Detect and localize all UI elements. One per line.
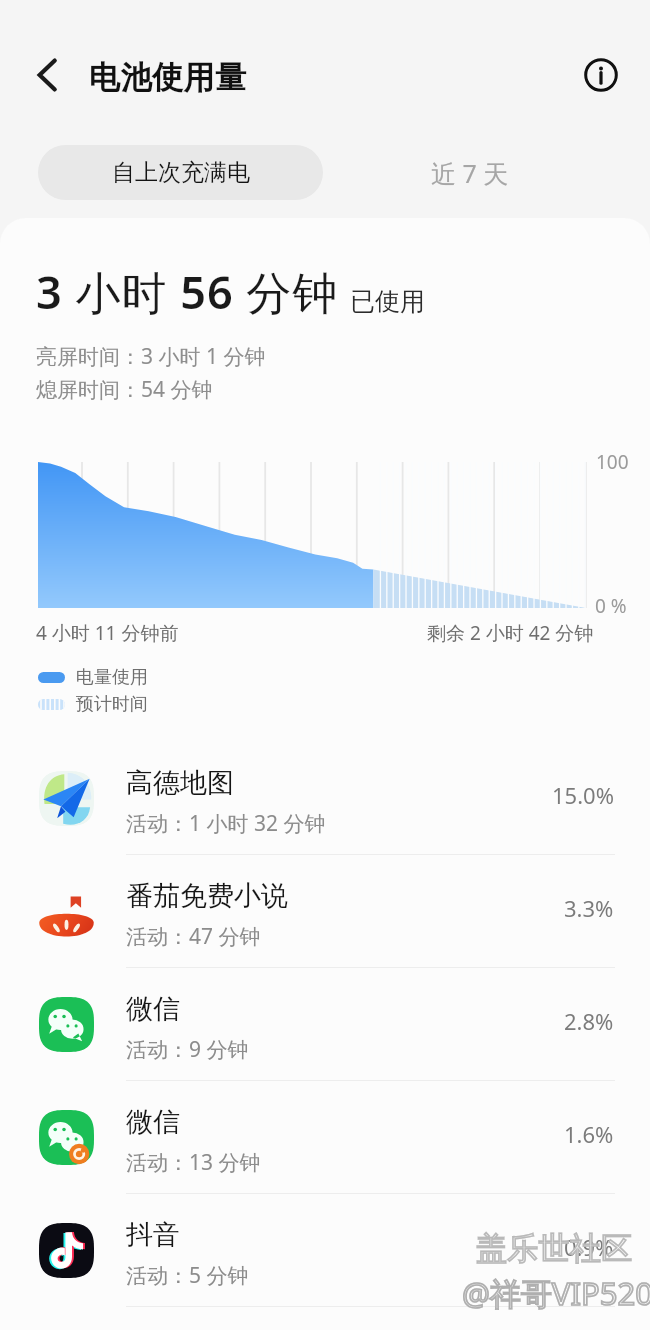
staticText: 3 小时 56 分钟 [36, 261, 339, 322]
staticText: 电量使用 [76, 666, 148, 689]
button[interactable]: 番茄免费小说 [0, 855, 650, 967]
button[interactable]: 抖音 [0, 1194, 650, 1306]
staticText: 活动：13 分钟 [126, 1148, 261, 1177]
staticText: 1.6% [564, 1119, 614, 1149]
staticText: 0 % [595, 593, 627, 619]
staticText: 预计时间 [76, 693, 148, 716]
staticText: 剩余 2 小时 42 分钟 [427, 620, 594, 646]
staticText: 4 小时 11 分钟前 [36, 620, 179, 646]
staticText: 近 7 天 [431, 156, 509, 190]
staticText: 0.9% [564, 1232, 614, 1262]
staticText: 15.0% [552, 780, 614, 810]
button[interactable]: 微信 [0, 1081, 650, 1193]
staticText: 微信 [126, 1105, 180, 1139]
staticText: 已使用 [350, 286, 425, 317]
staticText: 活动：1 小时 32 分钟 [126, 809, 326, 838]
staticText: 抖音 [126, 1218, 180, 1252]
staticText: 2.8% [564, 1006, 614, 1036]
button[interactable]: 微信 [0, 968, 650, 1080]
staticText: 3.3% [564, 893, 614, 923]
staticText: 活动：9 分钟 [126, 1035, 249, 1064]
staticText: 高德地图 [126, 766, 234, 800]
staticText: 盖乐世社区 [476, 1229, 633, 1268]
button[interactable]: Information [573, 47, 629, 103]
staticText: 熄屏时间：54 分钟 [36, 375, 213, 404]
staticText: 微信 [126, 992, 180, 1026]
staticText: 100 [596, 449, 629, 475]
staticText: 番茄免费小说 [126, 879, 288, 913]
staticText: @祥哥VIP520 [462, 1272, 650, 1314]
staticText: 活动：47 分钟 [126, 922, 261, 951]
staticText: @祥哥VIP520 [462, 1272, 650, 1314]
button[interactable]: 自上次充满电 [38, 145, 323, 200]
button[interactable]: 高德地图 [0, 742, 650, 854]
staticText: 自上次充满电 [112, 158, 250, 187]
staticText: 活动：5 分钟 [126, 1261, 249, 1290]
staticText: 亮屏时间：3 小时 1 分钟 [36, 342, 266, 371]
button[interactable]: Back [21, 47, 77, 103]
staticText: 电池使用量 [89, 58, 247, 97]
button[interactable]: 近 7 天 [370, 145, 570, 200]
staticText: 盖乐世社区 [476, 1229, 633, 1268]
